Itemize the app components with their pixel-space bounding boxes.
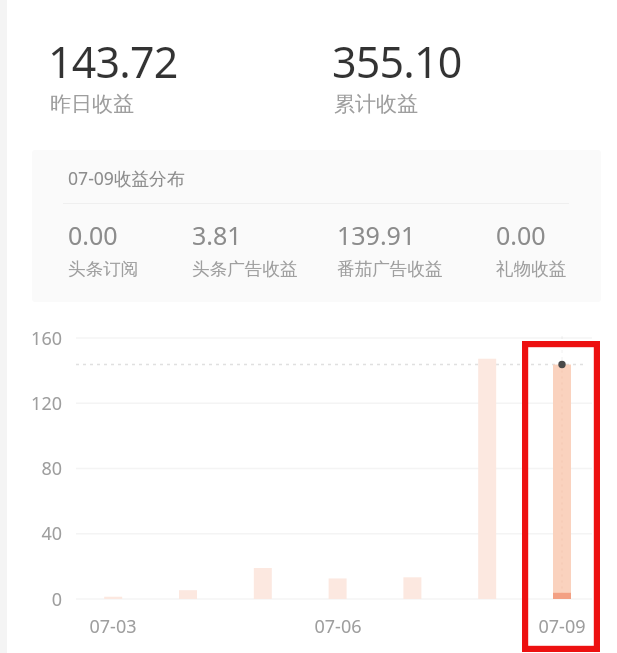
button[interactable]: 07-04 收益 — [151, 338, 226, 599]
button[interactable]: 3.81 — [192, 214, 304, 274]
staticText: 0.00 — [496, 218, 546, 252]
staticText: 07-03 — [68, 614, 158, 639]
button[interactable]: 0.00 — [68, 214, 180, 274]
staticText: 07-06 — [293, 614, 383, 639]
button[interactable]: 07-09收益分布 — [32, 150, 601, 302]
staticText: 160 — [0, 326, 62, 351]
staticText: 07-09 — [517, 614, 607, 639]
staticText: 0 — [0, 587, 62, 612]
staticText: 07-09收益分布 — [68, 166, 185, 190]
staticText: 累计收益 — [334, 91, 418, 117]
staticText: 355.10 — [332, 32, 462, 91]
button[interactable]: 139.91 — [337, 214, 449, 274]
button[interactable]: 07-08 收益 — [450, 338, 525, 599]
button[interactable]: 07-07 收益 — [375, 338, 450, 599]
staticText: 143.72 — [48, 32, 178, 91]
button[interactable]: 355.10 — [326, 26, 526, 126]
staticText: 头条广告收益 — [192, 258, 298, 280]
button[interactable]: 0.00 — [496, 214, 601, 274]
staticText: 139.91 — [337, 218, 416, 252]
button[interactable]: 07-06 收益 — [300, 338, 375, 599]
button[interactable]: 143.72 — [42, 26, 242, 126]
staticText: 番茄广告收益 — [337, 258, 443, 280]
staticText: 40 — [0, 521, 62, 546]
button[interactable]: 07-09 收益 — [525, 338, 600, 599]
staticText: 0.00 — [68, 218, 118, 252]
staticText: 礼物收益 — [496, 258, 567, 280]
staticText: 头条订阅 — [68, 258, 139, 280]
button[interactable]: 07-05 收益 — [225, 338, 300, 599]
staticText: 80 — [0, 456, 62, 481]
staticText: 3.81 — [192, 218, 242, 252]
staticText: 昨日收益 — [50, 91, 134, 117]
staticText: 120 — [0, 391, 62, 416]
